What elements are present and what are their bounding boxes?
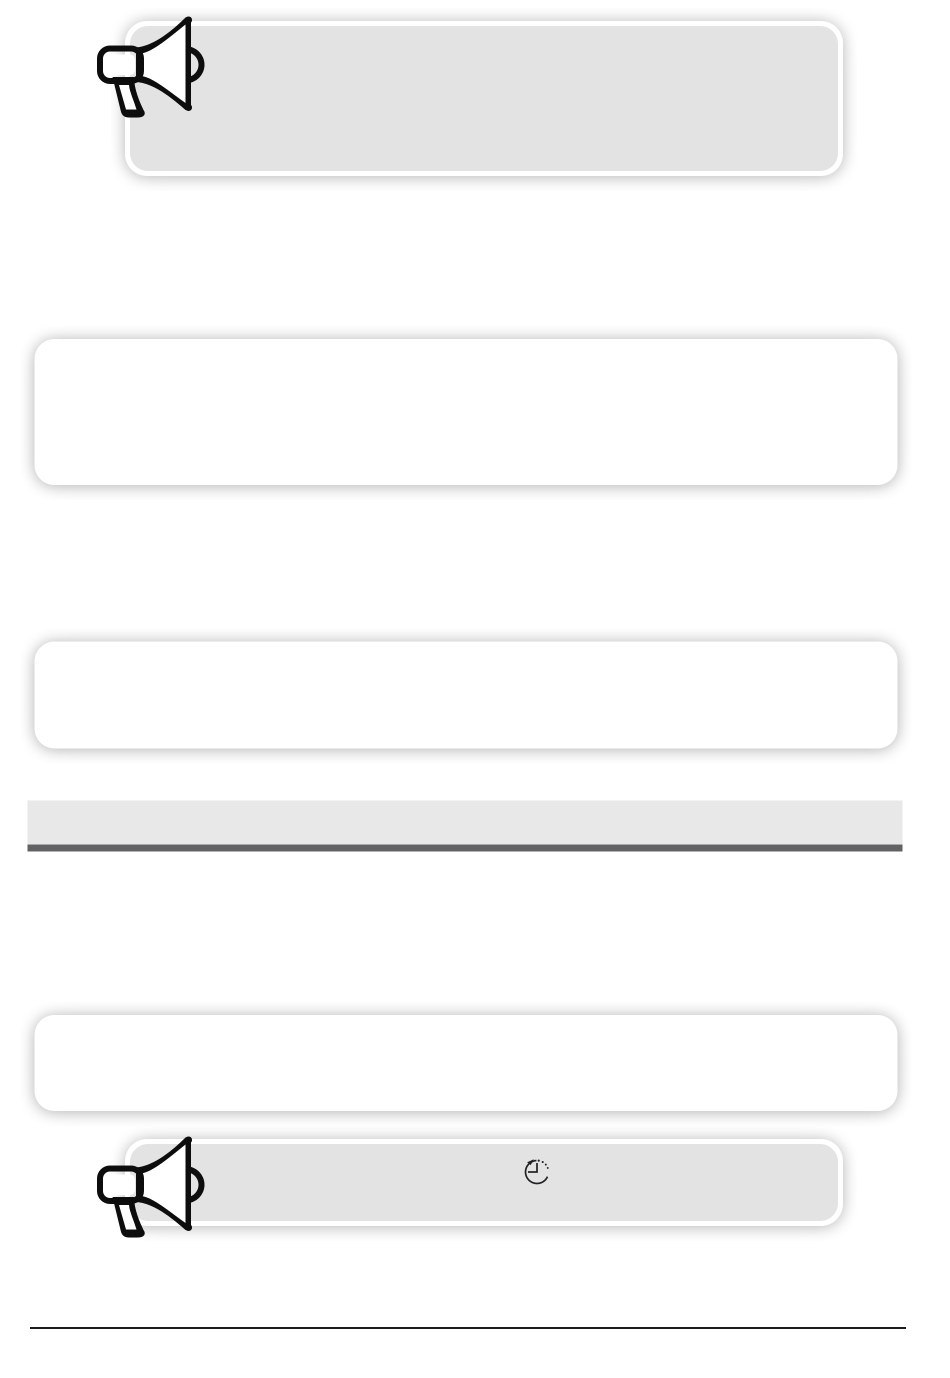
button[interactable]: Announcement xyxy=(100,1139,202,1239)
button[interactable] xyxy=(125,21,843,176)
button[interactable]: Announcement xyxy=(100,19,202,119)
button[interactable]: Message field xyxy=(27,800,902,851)
button[interactable] xyxy=(125,1139,843,1226)
